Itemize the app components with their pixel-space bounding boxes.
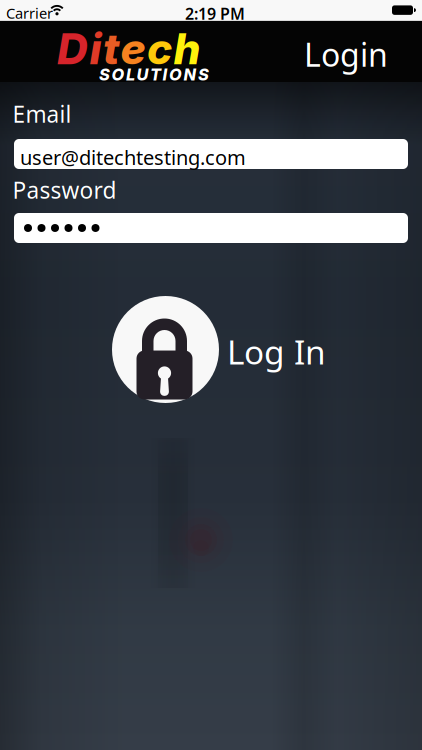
staticText: c (147, 23, 172, 75)
staticText: Password (12, 175, 116, 205)
staticText: D (57, 23, 88, 75)
staticText: Carrier (6, 3, 53, 23)
staticText: user@ditechtesting.com (20, 144, 246, 171)
staticText: SOLUTIONS (99, 64, 209, 84)
staticText: e (120, 23, 145, 75)
staticText: Email (12, 99, 71, 129)
staticText: t (103, 23, 119, 75)
button[interactable]: Password (14, 213, 408, 243)
staticText: Log In (227, 329, 326, 374)
button[interactable]: Email (14, 139, 408, 169)
button[interactable]: Log In (112, 296, 326, 403)
staticText: Login (304, 33, 388, 75)
staticText: h (173, 23, 200, 75)
staticText: 2:19 PM (185, 3, 245, 24)
staticText: i (89, 23, 101, 75)
